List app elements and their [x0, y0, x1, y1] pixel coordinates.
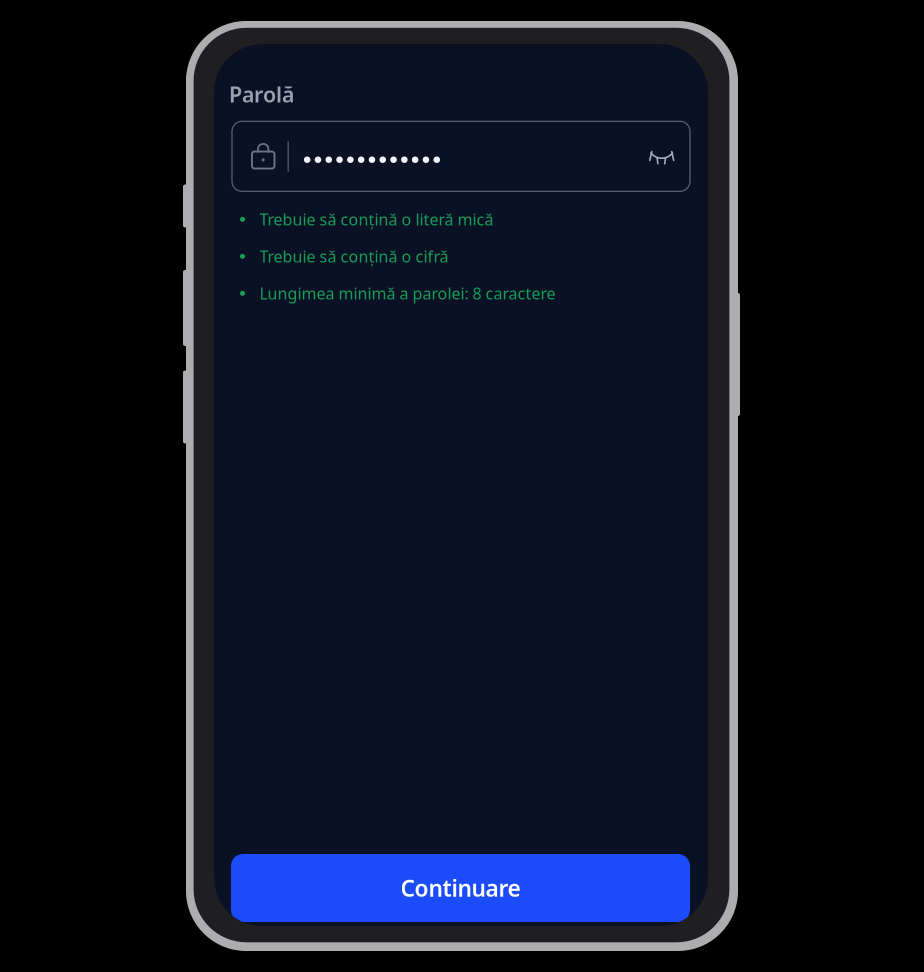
staticText: Continuare — [400, 873, 520, 903]
staticText: Parolă — [229, 80, 294, 108]
button[interactable]: Continuare — [231, 854, 690, 922]
button[interactable]: Parolă — [232, 121, 690, 191]
staticText: Lungimea minimă a parolei: 8 caractere — [259, 283, 555, 304]
staticText: Trebuie să conțină o literă mică — [259, 209, 493, 230]
staticText: Trebuie să conțină o cifră — [259, 246, 448, 267]
